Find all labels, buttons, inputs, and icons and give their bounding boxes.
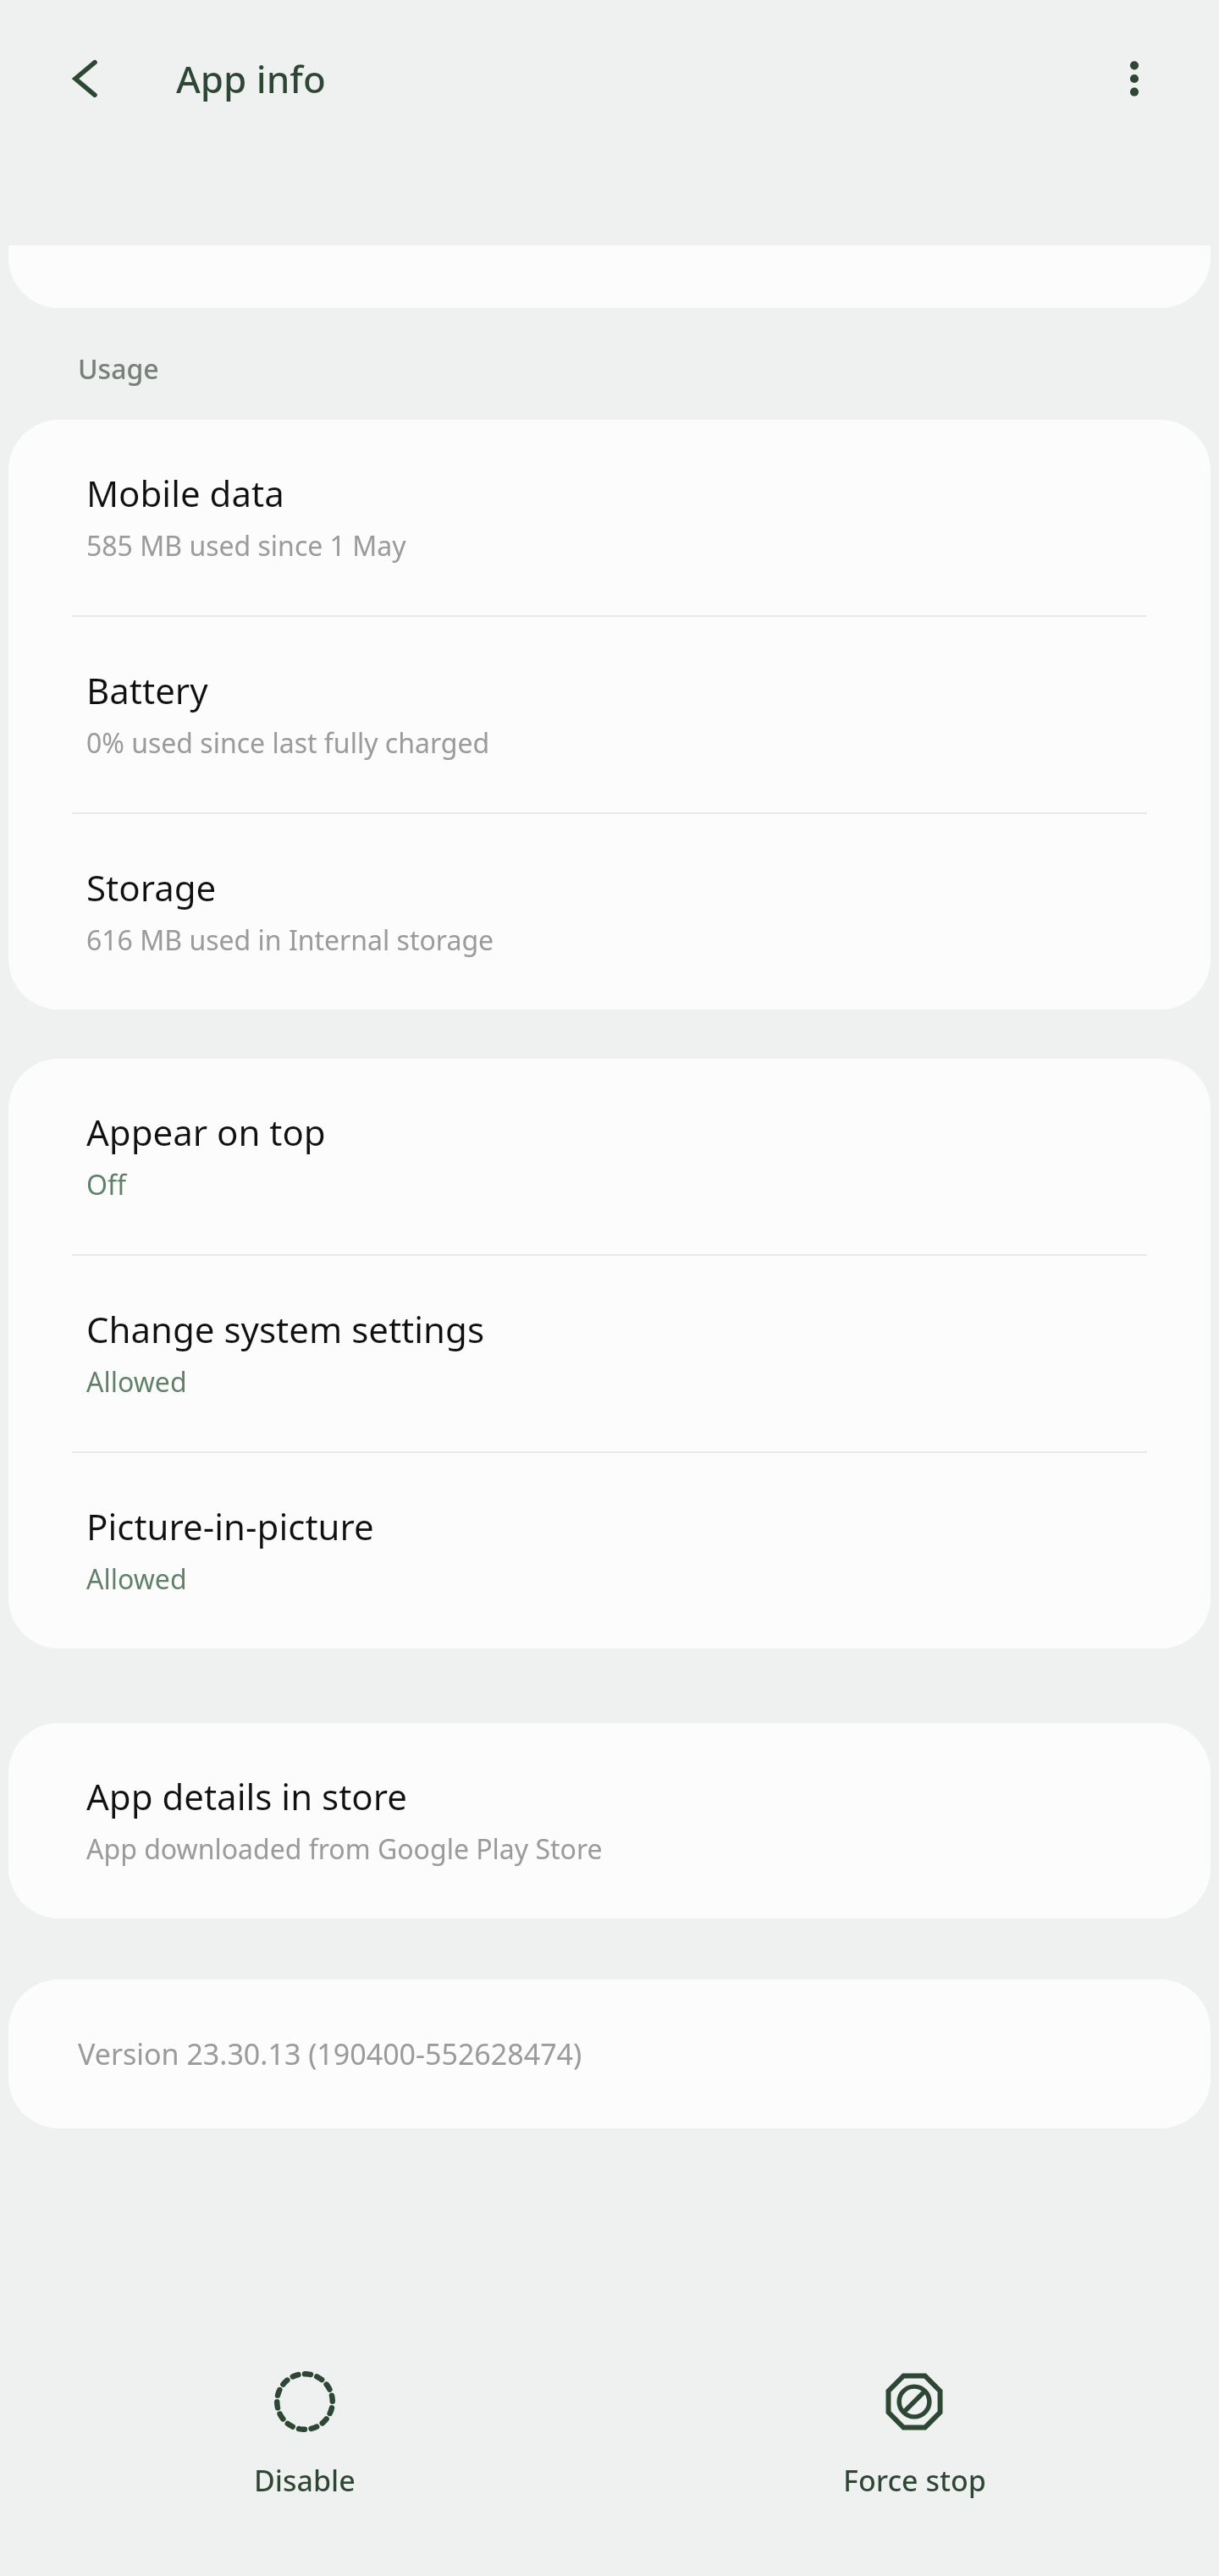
staticText: App downloaded from Google Play Store <box>86 1830 603 1868</box>
button[interactable]: Storage <box>8 814 1211 1010</box>
staticText: Picture-in-picture <box>86 1502 374 1550</box>
staticText: App details in store <box>86 1772 407 1820</box>
button[interactable]: Disable <box>0 2329 609 2534</box>
button[interactable]: Force stop <box>609 2329 1219 2534</box>
button[interactable]: Version 23.30.13 (190400-552628474) <box>8 1979 1211 2128</box>
staticText: Allowed <box>86 1363 187 1401</box>
button[interactable]: Picture-in-picture <box>8 1453 1211 1649</box>
staticText: 616 MB used in Internal storage <box>86 922 494 959</box>
staticText: Battery <box>86 666 208 714</box>
button[interactable]: Appear on top <box>8 1059 1211 1254</box>
staticText: Version 23.30.13 (190400-552628474) <box>78 2034 582 2073</box>
button[interactable]: Battery <box>8 617 1211 812</box>
staticText: Allowed <box>86 1560 187 1598</box>
staticText: Appear on top <box>86 1108 326 1156</box>
staticText: Mobile data <box>86 469 284 517</box>
button[interactable]: Change system settings <box>8 1256 1211 1451</box>
staticText: Usage <box>78 350 159 388</box>
button[interactable]: Mobile data <box>8 420 1211 615</box>
staticText: Storage <box>86 863 217 911</box>
button[interactable]: More options <box>1095 40 1173 118</box>
staticText: App info <box>176 53 326 104</box>
button[interactable]: Back <box>52 46 119 112</box>
staticText: Off <box>86 1166 127 1203</box>
staticText: 585 MB used since 1 May <box>86 527 406 564</box>
staticText: 0% used since last fully charged <box>86 724 490 762</box>
staticText: Disable <box>254 2461 356 2500</box>
staticText: Force stop <box>843 2461 986 2500</box>
button[interactable]: App details in store <box>8 1723 1211 1918</box>
staticText: Change system settings <box>86 1305 485 1353</box>
